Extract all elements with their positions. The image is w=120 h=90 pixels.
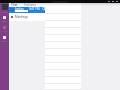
staticText: Chat xyxy=(11,3,18,7)
staticText: Chat xyxy=(2,19,8,22)
staticText: Activity xyxy=(0,10,9,13)
staticText: Contacts xyxy=(24,3,36,7)
button[interactable]: Contacts xyxy=(20,3,40,7)
button[interactable]: Chat xyxy=(9,3,20,7)
staticText: Files xyxy=(2,39,7,42)
staticText: Jordan xyxy=(15,7,24,11)
button[interactable]: Meetings xyxy=(9,13,45,21)
staticText: Teams xyxy=(1,29,9,32)
button[interactable]: Files xyxy=(0,36,9,42)
button[interactable]: Teams xyxy=(0,26,9,32)
button[interactable]: Chat xyxy=(0,16,9,22)
button[interactable]: Jordan xyxy=(9,7,45,13)
staticText: Meetings xyxy=(15,15,28,19)
staticText: 2:41 PM Offline xyxy=(29,7,52,11)
